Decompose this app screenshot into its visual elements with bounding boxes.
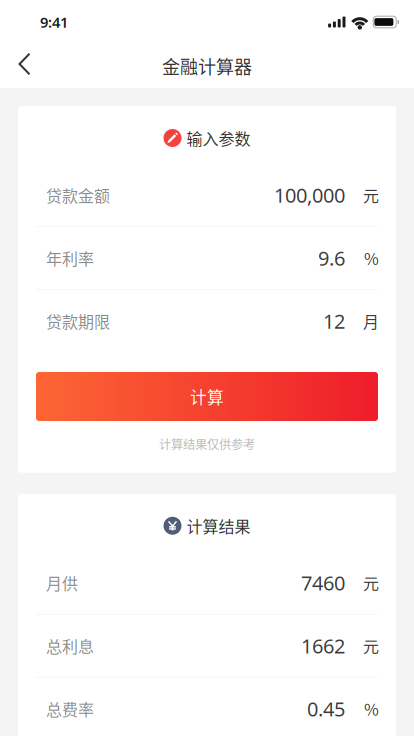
staticText: 输入参数 xyxy=(186,126,250,150)
button[interactable]: 返回 xyxy=(0,44,45,88)
staticText: % xyxy=(364,697,379,720)
staticText: 9:41 xyxy=(40,12,68,32)
staticText: 计算结果仅供参考 xyxy=(159,435,255,453)
staticText: 总利息 xyxy=(46,634,94,657)
staticText: % xyxy=(364,246,379,270)
button[interactable]: 年利率 xyxy=(18,227,396,289)
staticText: 计算 xyxy=(190,384,224,408)
staticText: 元 xyxy=(363,634,379,657)
button[interactable]: 计算 xyxy=(18,372,396,421)
staticText: 贷款期限 xyxy=(46,309,110,333)
staticText: 计算结果 xyxy=(186,514,250,537)
staticText: 12 xyxy=(323,308,345,334)
staticText: 0.45 xyxy=(307,695,345,722)
staticText: 9.6 xyxy=(318,245,345,271)
staticText: 年利率 xyxy=(46,246,94,270)
button[interactable]: 贷款期限 xyxy=(18,290,396,352)
staticText: 月 xyxy=(363,309,379,333)
staticText: 贷款金额 xyxy=(46,183,110,207)
staticText: 1662 xyxy=(301,632,345,659)
staticText: 7460 xyxy=(301,569,345,596)
staticText: 月供 xyxy=(46,571,78,594)
staticText: 100,000 xyxy=(274,182,345,208)
staticText: 元 xyxy=(363,183,379,207)
staticText: 元 xyxy=(363,571,379,594)
staticText: 金融计算器 xyxy=(162,53,252,79)
staticText: 总费率 xyxy=(46,697,94,720)
button[interactable]: 贷款金额 xyxy=(18,164,396,226)
